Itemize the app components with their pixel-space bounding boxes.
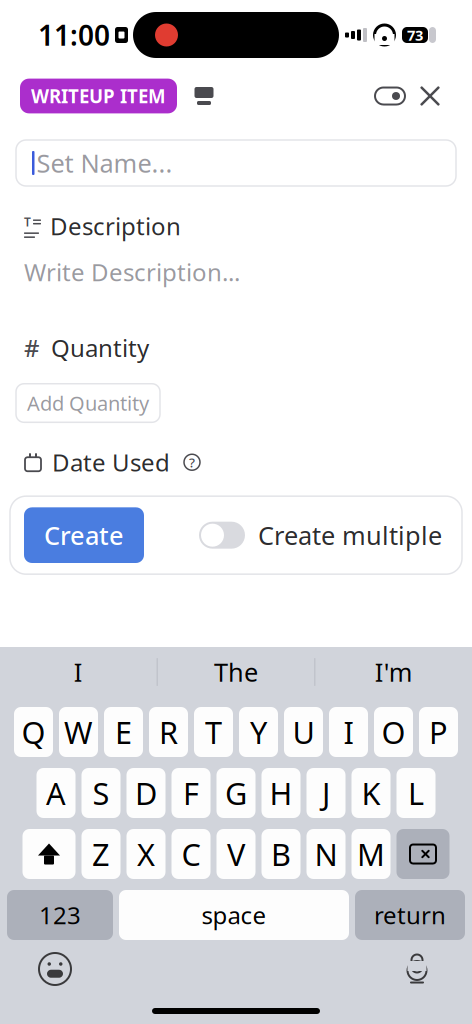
staticText: R <box>159 712 178 752</box>
button[interactable]: I <box>0 647 157 697</box>
button[interactable]: Q <box>14 707 53 757</box>
button[interactable]: Close <box>410 76 450 116</box>
staticText: C <box>181 834 200 874</box>
staticText: P <box>429 712 448 752</box>
staticText: 73 <box>407 25 423 45</box>
button[interactable]: Dictation <box>394 946 440 992</box>
button[interactable]: Layout <box>187 81 221 111</box>
button[interactable]: WRITEUP ITEM <box>20 79 177 113</box>
button[interactable]: I'm <box>315 647 472 697</box>
button[interactable]: 123 <box>7 890 113 940</box>
staticText: ? <box>189 453 195 471</box>
button[interactable]: Emoji <box>32 946 78 992</box>
button[interactable]: Y <box>239 707 278 757</box>
staticText: Date Used <box>52 446 170 478</box>
button[interactable]: Shift <box>22 829 75 879</box>
button[interactable]: H <box>261 768 300 818</box>
staticText: # <box>24 332 40 364</box>
staticText: I <box>74 655 83 689</box>
staticText: Create <box>44 518 124 552</box>
button[interactable]: Write Description... <box>0 242 472 286</box>
staticText: Description <box>50 210 181 242</box>
button[interactable]: B <box>261 829 300 879</box>
button[interactable]: M <box>351 829 390 879</box>
staticText: Write Description... <box>24 256 240 288</box>
button[interactable]: Create <box>24 507 144 563</box>
staticText: M <box>357 834 385 874</box>
staticText: N <box>314 834 337 874</box>
button[interactable]: N <box>306 829 345 879</box>
button[interactable]: A <box>36 768 75 818</box>
button[interactable]: I <box>329 707 368 757</box>
staticText: F <box>183 773 199 813</box>
staticText: T <box>205 712 222 752</box>
button[interactable]: Z <box>81 829 120 879</box>
staticText: S <box>92 773 109 813</box>
staticText: return <box>374 899 446 931</box>
button[interactable]: Create multiple <box>199 518 442 552</box>
staticText: I <box>343 712 353 752</box>
staticText: Z <box>92 834 110 874</box>
button[interactable]: Delete <box>396 829 449 879</box>
staticText: W <box>64 712 93 752</box>
button[interactable]: The <box>158 647 314 697</box>
staticText: 11:00 <box>38 16 110 54</box>
staticText: 123 <box>39 899 81 931</box>
button[interactable]: R <box>149 707 188 757</box>
button[interactable]: Add Quantity <box>16 384 160 422</box>
staticText: E <box>115 712 132 752</box>
button[interactable]: K <box>351 768 390 818</box>
staticText: space <box>201 899 266 931</box>
button[interactable]: C <box>171 829 210 879</box>
button[interactable]: P <box>419 707 458 757</box>
staticText: D <box>135 773 157 813</box>
staticText: Set Name... <box>36 146 172 180</box>
staticText: Q <box>21 712 45 752</box>
staticText: Quantity <box>51 332 149 364</box>
staticText: A <box>46 773 66 813</box>
button[interactable]: T <box>194 707 233 757</box>
button[interactable]: E <box>104 707 143 757</box>
staticText: J <box>322 773 330 813</box>
button[interactable]: J <box>306 768 345 818</box>
staticText: I'm <box>375 655 413 689</box>
button[interactable]: return <box>355 890 465 940</box>
staticText: B <box>271 834 291 874</box>
staticText: K <box>361 773 380 813</box>
button[interactable]: G <box>216 768 255 818</box>
staticText: The <box>214 655 258 689</box>
button[interactable]: O <box>374 707 413 757</box>
button[interactable]: U <box>284 707 323 757</box>
staticText: H <box>269 773 292 813</box>
button[interactable]: F <box>171 768 210 818</box>
staticText: V <box>227 834 245 874</box>
staticText: Add Quantity <box>27 390 149 416</box>
button[interactable]: space <box>119 890 349 940</box>
staticText: G <box>225 773 247 813</box>
staticText: X <box>137 834 155 874</box>
staticText: T <box>24 214 31 230</box>
staticText: U <box>292 712 314 752</box>
button[interactable]: S <box>81 768 120 818</box>
staticText: Y <box>250 712 267 752</box>
staticText: L <box>408 773 424 813</box>
button[interactable]: W <box>59 707 98 757</box>
button[interactable]: Help about date used <box>180 450 204 474</box>
staticText: WRITEUP ITEM <box>31 84 166 108</box>
staticText: O <box>381 712 405 752</box>
button[interactable]: V <box>216 829 255 879</box>
button[interactable]: L <box>396 768 435 818</box>
button[interactable]: Set Name... <box>0 140 472 186</box>
button[interactable]: D <box>126 768 165 818</box>
button[interactable]: Toggle option <box>370 79 410 113</box>
staticText: Create multiple <box>258 518 442 552</box>
button[interactable]: X <box>126 829 165 879</box>
